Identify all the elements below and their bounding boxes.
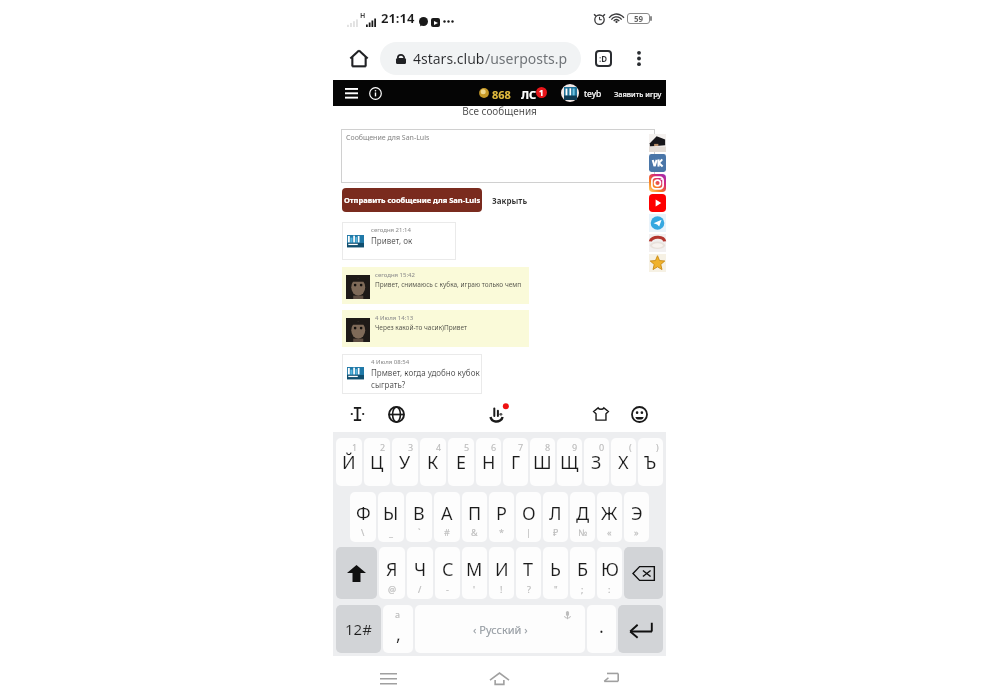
staticText: . (599, 614, 604, 639)
button[interactable]: Share on VK (649, 153, 666, 173)
staticText: Прмвет, когда удобно кубок сыграть? (371, 367, 482, 390)
button[interactable]: Share on YouTube (649, 193, 666, 213)
staticText: 5 (464, 441, 470, 453)
button[interactable]: Г (503, 438, 528, 486)
button[interactable]: Share on Odnoklassniki (649, 233, 666, 253)
button[interactable]: Text editing (345, 402, 369, 426)
button[interactable]: Reader mode (595, 50, 612, 67)
staticText: ! (500, 583, 503, 595)
button[interactable]: Back (555, 656, 666, 700)
staticText: 21:14 (381, 9, 415, 27)
button[interactable]: А (434, 492, 460, 542)
staticText: 4 Июля 14:13 (375, 314, 414, 322)
staticText: Все сообщения (333, 104, 666, 118)
staticText: а (395, 608, 401, 620)
button[interactable]: Й (336, 438, 362, 486)
button[interactable]: сегодня 21:14 (342, 222, 456, 260)
button[interactable]: . (587, 605, 616, 653)
button[interactable]: Х (611, 438, 636, 486)
button[interactable]: Backspace (624, 547, 663, 599)
button[interactable]: Share on Instagram (649, 173, 666, 193)
staticText: сегодня 21:14 (371, 226, 411, 234)
staticText: И (495, 557, 509, 582)
button[interactable]: Н (476, 438, 501, 486)
button[interactable]: Home (345, 44, 373, 72)
button[interactable]: П (462, 492, 487, 542)
staticText: 7 (518, 441, 524, 453)
button[interactable]: Home (444, 656, 555, 700)
button[interactable]: More options (626, 45, 652, 71)
button[interactable]: Add to favourites (649, 253, 666, 273)
button[interactable]: Ю (597, 547, 622, 599)
staticText: « (607, 526, 612, 538)
button[interactable]: З (584, 438, 609, 486)
staticText: 6 (491, 441, 497, 453)
button[interactable]: Info (367, 85, 383, 101)
button[interactable]: Закрыть (487, 189, 532, 211)
staticText: К (427, 450, 439, 475)
button[interactable]: Ъ (638, 438, 663, 486)
staticText: ( (629, 441, 632, 453)
button[interactable]: Ц (364, 438, 390, 486)
button[interactable]: 4 Июля 08:54 (342, 354, 482, 394)
button[interactable]: Recent apps (333, 656, 444, 700)
button[interactable]: Ш (530, 438, 555, 486)
button[interactable]: Б (570, 547, 595, 599)
button[interactable]: Д (570, 492, 595, 542)
button[interactable]: Change language (384, 402, 408, 426)
button[interactable]: 4 Июля 14:13 (342, 310, 529, 347)
button[interactable]: Menu (342, 84, 360, 102)
button[interactable]: И (489, 547, 514, 599)
button[interactable]: О (516, 492, 541, 542)
staticText: / (418, 583, 422, 595)
button[interactable]: В (406, 492, 432, 542)
button[interactable]: Е (448, 438, 474, 486)
button[interactable]: Р (489, 492, 514, 542)
button[interactable]: Shift (336, 547, 377, 599)
button[interactable]: Ж (597, 492, 622, 542)
staticText: сегодня 15:42 (375, 271, 415, 279)
staticText: Й (342, 450, 356, 475)
staticText: 8 (545, 441, 551, 453)
button[interactable]: Address bar (380, 42, 581, 75)
button[interactable]: К (420, 438, 446, 486)
staticText: Ъ (644, 450, 657, 475)
button[interactable]: Я (379, 547, 405, 599)
button[interactable]: Т (516, 547, 541, 599)
button[interactable]: 12# (336, 605, 381, 653)
button[interactable]: Share on social network (649, 133, 666, 153)
staticText: 12# (345, 619, 372, 639)
button[interactable]: Щ (557, 438, 582, 486)
button[interactable]: Emoji (626, 401, 652, 427)
button[interactable]: Space (415, 605, 585, 653)
staticText: Э (631, 501, 643, 526)
button[interactable]: Отправить сообщение для San-Luis (342, 188, 482, 212)
button[interactable]: Enter (618, 605, 663, 653)
staticText: ) (656, 441, 659, 453)
button[interactable]: Заявить игру (614, 89, 662, 99)
button[interactable]: Message input field (341, 129, 655, 183)
button[interactable]: , (383, 605, 413, 653)
button[interactable]: Ф (350, 492, 376, 542)
button[interactable]: Э (624, 492, 649, 542)
staticText: /userposts.p (485, 49, 568, 68)
staticText: А (441, 501, 453, 526)
button[interactable]: Themes (588, 401, 614, 427)
staticText: ' (473, 583, 476, 595)
button[interactable]: М (462, 547, 487, 599)
button[interactable]: Share on Telegram (649, 213, 666, 233)
button[interactable]: сегодня 15:42 (342, 267, 529, 304)
staticText: 0 (599, 441, 605, 453)
button[interactable]: С (435, 547, 460, 599)
button[interactable]: У (392, 438, 418, 486)
button[interactable]: Л (543, 492, 568, 542)
button[interactable]: Keyboard settings (484, 400, 512, 428)
staticText: Закрыть (492, 195, 528, 206)
staticText: 1 (352, 441, 358, 453)
button[interactable]: Ч (407, 547, 433, 599)
staticText: " (554, 583, 558, 595)
button[interactable]: Ь (543, 547, 568, 599)
staticText: Я (386, 557, 398, 582)
staticText: Через какой-то часик)Привет (375, 323, 468, 332)
button[interactable]: Ы (378, 492, 404, 542)
